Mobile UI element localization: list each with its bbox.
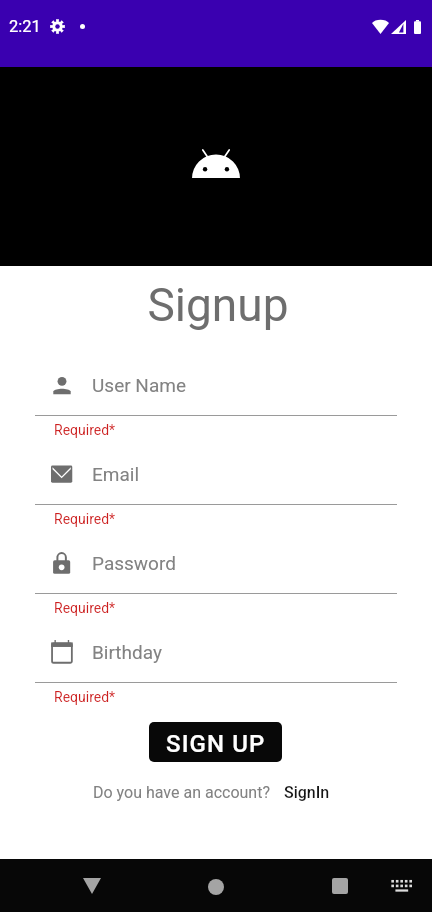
- button[interactable]: Password: [50, 533, 397, 593]
- button[interactable]: Keyboard: [378, 859, 426, 912]
- button[interactable]: Home: [154, 859, 278, 912]
- button[interactable]: SignIn: [275, 777, 339, 807]
- staticText: Required*: [54, 422, 116, 438]
- staticText: Required*: [54, 511, 116, 527]
- staticText: SIGN UP: [166, 730, 266, 758]
- button[interactable]: Recents: [278, 859, 402, 912]
- staticText: User Name: [92, 374, 186, 396]
- staticText: Birthday: [92, 641, 162, 663]
- staticText: Password: [92, 552, 176, 574]
- button[interactable]: Back: [29, 859, 154, 912]
- staticText: Email: [92, 463, 140, 485]
- staticText: Do you have an account?: [93, 783, 270, 802]
- button[interactable]: SIGN UP: [149, 722, 282, 762]
- staticText: Signup: [2, 278, 432, 332]
- button[interactable]: Email: [50, 444, 397, 504]
- staticText: Required*: [54, 600, 116, 616]
- button[interactable]: Birthday: [50, 622, 397, 682]
- staticText: 2:21: [9, 17, 41, 36]
- staticText: SignIn: [284, 783, 330, 802]
- staticText: Required*: [54, 689, 116, 705]
- button[interactable]: User Name: [50, 355, 397, 415]
